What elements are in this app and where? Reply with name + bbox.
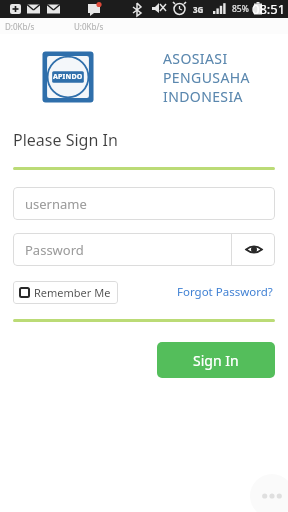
staticText: D:0Kb/s	[5, 21, 35, 32]
button[interactable]: username	[13, 187, 275, 220]
staticText: U:0Kb/s	[74, 21, 104, 32]
staticText: Sign In	[193, 351, 239, 370]
staticText: PENGUSAHA	[163, 68, 250, 87]
staticText: Remember Me	[34, 285, 111, 300]
button[interactable]: Password	[13, 233, 231, 266]
staticText: ASOSIASI	[163, 49, 228, 68]
button[interactable]: More options	[250, 474, 288, 512]
staticText: APINDO	[53, 72, 83, 82]
button[interactable]: Sign In	[157, 342, 275, 378]
button[interactable]: Remember Me	[13, 281, 118, 304]
staticText: Password	[25, 241, 84, 259]
staticText: Forgot Password?	[177, 284, 273, 300]
staticText: 3G	[193, 4, 204, 15]
button[interactable]: Show password	[232, 233, 275, 266]
staticText: username	[25, 195, 87, 213]
staticText: 08:51	[252, 0, 286, 18]
staticText: 85%	[232, 3, 249, 15]
button[interactable]: Forgot Password?	[175, 280, 275, 304]
staticText: Please Sign In	[13, 129, 118, 151]
staticText: INDONESIA	[163, 87, 243, 106]
